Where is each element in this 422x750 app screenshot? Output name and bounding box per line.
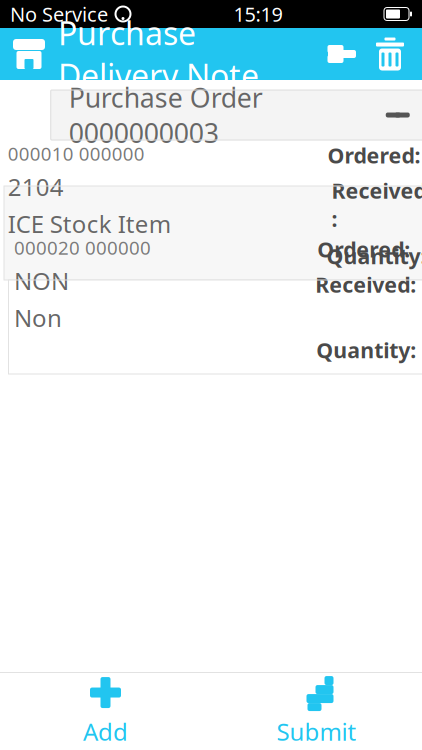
- staticText: Quantity:: [326, 242, 422, 270]
- button[interactable]: Add: [0, 673, 211, 750]
- staticText: Purchase Delivery Note: [58, 11, 259, 96]
- button[interactable]: Purchase Order 0000000003: [51, 90, 422, 140]
- staticText: 000020 000000: [14, 235, 151, 260]
- staticText: Purchase Order 0000000003: [69, 80, 263, 150]
- button[interactable]: Home: [0, 28, 58, 80]
- button[interactable]: Back: [318, 28, 366, 80]
- staticText: Add: [83, 716, 128, 747]
- button[interactable]: Delete: [366, 28, 414, 80]
- staticText: Ordered:: [327, 141, 420, 169]
- staticText: Received:: [331, 176, 422, 233]
- button[interactable]: 000020 000000: [8, 280, 422, 374]
- staticText: No Service: [10, 1, 108, 27]
- staticText: 15:19: [233, 1, 282, 27]
- staticText: Received:: [315, 270, 416, 299]
- staticText: Submit: [276, 716, 356, 747]
- button[interactable]: Submit: [211, 673, 422, 750]
- staticText: 000010 000000: [8, 141, 145, 166]
- staticText: Quantity:: [316, 336, 416, 364]
- staticText: NON: [14, 265, 69, 297]
- staticText: ICE Stock Item: [8, 208, 171, 240]
- staticText: 2104: [8, 171, 64, 203]
- staticText: Non: [14, 302, 62, 334]
- staticText: Ordered:: [317, 235, 410, 263]
- button[interactable]: 000010 000000: [4, 186, 422, 280]
